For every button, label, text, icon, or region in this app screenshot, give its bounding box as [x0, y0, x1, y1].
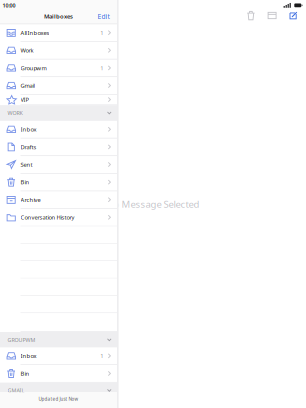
staticText: No Message Selected	[106, 197, 199, 211]
staticText: Mailboxes	[44, 12, 73, 20]
staticText: Gmail	[20, 82, 34, 89]
staticText: Bin	[20, 370, 29, 377]
button[interactable]: Compose	[285, 9, 302, 22]
button[interactable]: Archive	[0, 191, 117, 209]
button[interactable]: Inbox	[0, 121, 117, 138]
staticText: GMAIL	[8, 387, 25, 394]
button[interactable]: All Inboxes	[0, 24, 117, 42]
staticText: Updated Just Now	[38, 396, 78, 402]
staticText: GROUPWM	[8, 336, 36, 343]
button[interactable]: Conversation History	[0, 209, 117, 226]
button[interactable]: Delete	[242, 9, 259, 22]
button[interactable]: Drafts	[0, 138, 117, 156]
staticText: All Inboxes	[20, 29, 49, 37]
staticText: Inbox	[20, 352, 36, 360]
button[interactable]: Work	[0, 42, 117, 59]
button[interactable]: Gmail	[0, 77, 117, 95]
staticText: Bin	[20, 178, 29, 186]
staticText: Archive	[20, 196, 40, 204]
button[interactable]: Move to folder	[264, 9, 281, 22]
staticText: Drafts	[20, 143, 36, 151]
button[interactable]: Sent	[0, 156, 117, 174]
button[interactable]: Edit	[92, 11, 117, 21]
staticText: VIP	[20, 96, 28, 103]
button[interactable]: Bin	[0, 365, 117, 383]
staticText: Conversation History	[20, 213, 74, 221]
button[interactable]: GMAIL	[0, 383, 117, 392]
button[interactable]: GROUPWM	[0, 332, 117, 347]
staticText: Work	[20, 46, 33, 54]
staticText: 1	[100, 352, 103, 360]
staticText: Edit	[97, 12, 109, 21]
button[interactable]: WORK	[0, 105, 117, 121]
staticText: 1	[100, 64, 103, 72]
staticText: 1	[100, 29, 103, 37]
staticText: Inbox	[20, 125, 36, 133]
button[interactable]: Groupwm	[0, 59, 117, 77]
staticText: 10:00	[3, 2, 16, 9]
staticText: WORK	[8, 109, 23, 117]
button[interactable]: Bin	[0, 174, 117, 191]
staticText: Groupwm	[20, 64, 46, 72]
button[interactable]: Inbox	[0, 347, 117, 365]
staticText: Sent	[20, 161, 32, 168]
button[interactable]: VIP	[0, 95, 117, 105]
